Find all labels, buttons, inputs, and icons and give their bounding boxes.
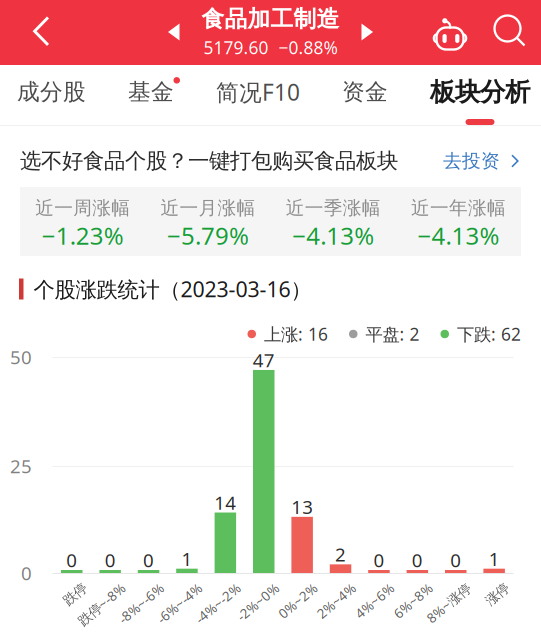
button[interactable]: 成分股 <box>17 65 86 125</box>
button[interactable]: 选不好食品个股？一键打包购买食品板块 <box>0 135 541 187</box>
staticText: 0 <box>143 548 154 572</box>
button[interactable]: 板块分析 <box>430 65 530 125</box>
staticText: 25 <box>10 454 32 478</box>
staticText: −5.79% <box>167 219 249 251</box>
staticText: 选不好食品个股？一键打包购买食品板块 <box>20 148 398 174</box>
staticText: 个股涨跌统计（2023-03-16） <box>33 275 311 303</box>
staticText: 6%~8% <box>385 577 431 595</box>
staticText: 下跌: 62 <box>457 322 521 345</box>
staticText: 近一月涨幅 <box>160 197 255 219</box>
staticText: 1 <box>181 546 192 571</box>
staticText: 资金 <box>342 78 388 106</box>
staticText: 0 <box>450 548 461 572</box>
staticText: 跌停~-8% <box>66 577 123 595</box>
staticText: 平盘: 2 <box>365 322 419 345</box>
staticText: 2%~4% <box>308 577 354 595</box>
staticText: 基金 <box>128 78 174 106</box>
staticText: −1.23% <box>42 219 124 251</box>
staticText: 8%~涨停 <box>416 577 469 595</box>
staticText: 4%~6% <box>346 577 392 595</box>
button[interactable]: Search <box>479 0 541 63</box>
staticText: -4%~-2% <box>185 577 239 595</box>
staticText: -6%~-4% <box>146 577 200 595</box>
staticText: 0 <box>373 548 384 572</box>
staticText: 50 <box>10 345 32 369</box>
staticText: 0 <box>105 548 116 572</box>
staticText: 去投资 <box>443 149 500 172</box>
staticText: 成分股 <box>17 78 86 106</box>
staticText: 跌停 <box>59 578 85 594</box>
button[interactable]: 资金 <box>342 65 388 125</box>
staticText: 0 <box>21 561 32 585</box>
staticText: −4.13% <box>292 219 374 251</box>
button[interactable]: 简况F10 <box>216 65 300 125</box>
staticText: -8%~-6% <box>108 577 162 595</box>
staticText: 0 <box>412 548 423 572</box>
staticText: 板块分析 <box>430 76 530 107</box>
staticText: 0%~2% <box>269 577 315 595</box>
staticText: 近一周涨幅 <box>35 197 130 219</box>
staticText: -2%~0% <box>227 577 277 595</box>
staticText: 5179.60 −0.88% <box>203 36 337 59</box>
staticText: 0 <box>66 548 77 572</box>
staticText: 涨停 <box>481 578 507 594</box>
staticText: 47 <box>253 348 275 372</box>
staticText: 简况F10 <box>216 77 300 107</box>
staticText: 食品加工制造 <box>201 5 339 33</box>
button[interactable]: Back <box>0 0 83 63</box>
staticText: 上涨: 16 <box>264 322 328 345</box>
staticText: −4.13% <box>417 219 499 251</box>
button[interactable]: AI assistant <box>421 0 479 63</box>
staticText: 14 <box>214 490 236 515</box>
staticText: 近一季涨幅 <box>286 197 381 219</box>
staticText: 2 <box>335 542 346 567</box>
staticText: 1 <box>489 546 500 571</box>
staticText: 近一年涨幅 <box>411 197 506 219</box>
staticText: 13 <box>291 494 313 519</box>
button[interactable]: 基金 <box>128 65 174 125</box>
